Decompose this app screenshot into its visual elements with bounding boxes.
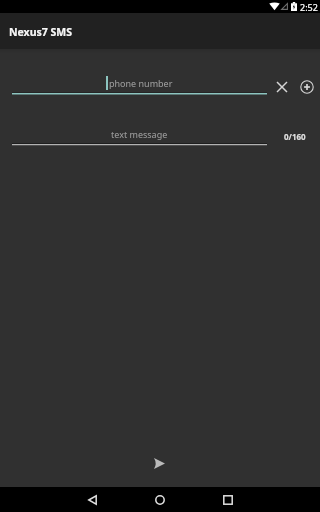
button[interactable]: phone number — [12, 72, 266, 93]
staticText: 2:52 — [300, 1, 318, 13]
staticText: phone number — [109, 77, 173, 89]
button[interactable]: Recents — [210, 487, 246, 512]
button[interactable]: Home — [142, 487, 178, 512]
button[interactable]: Clear — [270, 75, 293, 98]
button[interactable]: Back — [74, 487, 110, 512]
staticText: 0/160 — [284, 131, 306, 142]
button[interactable]: text message — [12, 124, 266, 144]
button[interactable]: Send — [139, 443, 179, 483]
button[interactable]: Add contact — [296, 76, 318, 98]
staticText: text message — [111, 128, 168, 140]
staticText: Nexus7 SMS — [9, 25, 72, 39]
